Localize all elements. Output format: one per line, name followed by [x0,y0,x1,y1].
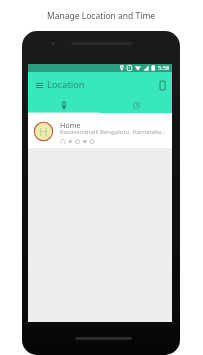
button[interactable]: H [28,113,172,148]
staticText: H [39,124,48,140]
button[interactable]: Device [155,78,169,92]
staticText: Kasavanahalli Bengaluru, Karnataka... [60,128,167,136]
staticText: Manage Location and Time [47,10,156,22]
button[interactable]: Time tab [100,97,172,113]
button[interactable]: Open navigation drawer [32,78,46,92]
staticText: 5:58 [158,64,170,72]
staticText: Home [60,120,81,130]
staticText: Location [47,78,85,91]
button[interactable]: Location tab [28,97,100,113]
